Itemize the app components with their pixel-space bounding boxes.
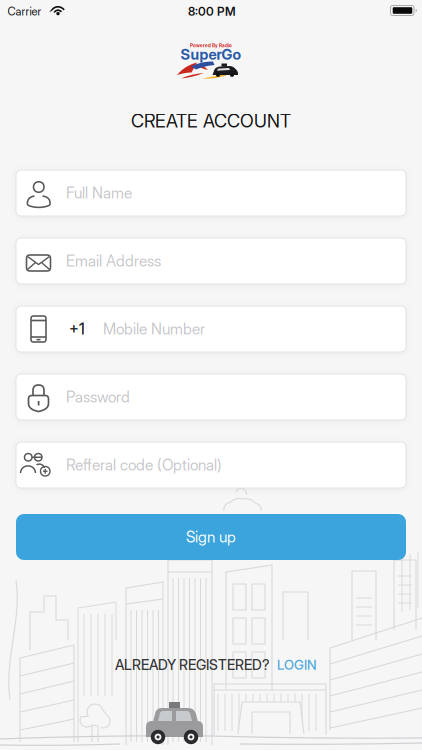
button[interactable]: Password <box>16 374 406 420</box>
staticText: Carrier <box>7 5 41 18</box>
staticText: Powered By Radio <box>190 43 232 48</box>
staticText: Email Address <box>66 252 161 270</box>
staticText: Password <box>66 388 130 406</box>
staticText: Mobile Number <box>103 320 205 338</box>
button[interactable]: Email Address <box>16 238 406 284</box>
staticText: +1 <box>69 320 85 338</box>
staticText: SuperGo <box>180 46 241 63</box>
button[interactable]: Sign up <box>16 514 406 560</box>
button[interactable]: Refferal code (Optional) <box>16 442 406 488</box>
staticText: Refferal code (Optional) <box>66 456 222 474</box>
button[interactable]: Full Name <box>16 170 406 216</box>
staticText: LOGIN <box>277 657 317 673</box>
staticText: CREATE ACCOUNT <box>131 110 291 132</box>
button[interactable]: LOGIN <box>277 657 317 673</box>
button[interactable]: +1 <box>16 306 406 352</box>
staticText: 8:00 PM <box>188 4 236 19</box>
staticText: Sign up <box>186 528 236 546</box>
staticText: Full Name <box>66 184 132 202</box>
staticText: ALREADY REGISTERED? <box>115 656 270 673</box>
